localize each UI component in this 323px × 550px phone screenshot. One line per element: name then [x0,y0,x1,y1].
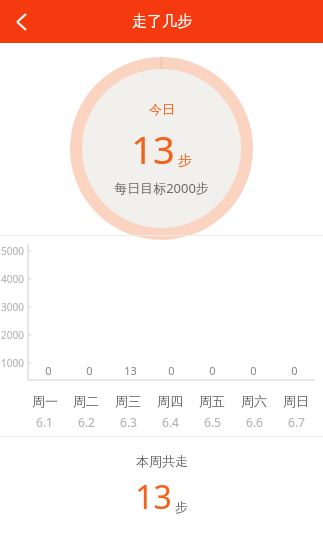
staticText: 周五 [199,393,225,409]
staticText: 13 [124,363,137,378]
staticText: 5000 [1,244,24,258]
staticText: 周四 [157,393,183,409]
staticText: 走了几步 [132,12,192,31]
staticText: 0 [168,363,175,378]
staticText: 0 [291,363,298,378]
staticText: 周日 [283,393,309,409]
staticText: 3000 [1,300,24,314]
staticText: 0 [250,363,257,378]
staticText: 周一 [32,393,58,409]
staticText: 13 [131,123,175,175]
staticText: 6.7 [288,414,305,430]
staticText: 周三 [115,393,141,409]
staticText: 13 [135,475,172,519]
staticText: 步 [175,499,188,515]
staticText: 1000 [1,356,24,370]
staticText: 每日目标2000步 [114,179,209,197]
staticText: 6.1 [36,414,53,430]
staticText: 周六 [241,393,267,409]
staticText: 0 [45,363,52,378]
staticText: 6.3 [120,414,137,430]
staticText: 周二 [73,393,99,409]
staticText: 4000 [1,272,24,286]
staticText: 6.6 [246,414,263,430]
staticText: 6.4 [162,414,179,430]
staticText: 今日 [149,101,175,117]
staticText: 0 [209,363,216,378]
staticText: 0 [86,363,93,378]
staticText: 步 [178,152,192,170]
staticText: 6.5 [204,414,221,430]
button[interactable]: Back [0,0,44,43]
staticText: 6.2 [78,414,95,430]
staticText: 本周共走 [136,453,188,469]
staticText: 2000 [1,328,24,342]
